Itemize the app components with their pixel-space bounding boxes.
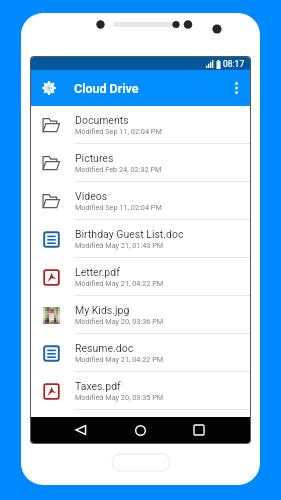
staticText: Modified Sep 11, 02:04 PM	[75, 203, 162, 212]
staticText: My Kids.jpg	[75, 304, 130, 316]
button[interactable]: Resume.doc	[31, 334, 250, 372]
staticText: Modified May 20, 03:36 PM	[75, 317, 164, 326]
staticText: Birthday Guest List.doc	[75, 228, 184, 240]
staticText: Modified Feb 24, 02:32 PM	[75, 165, 162, 174]
staticText: Videos	[75, 190, 108, 202]
staticText: Documents	[75, 114, 129, 126]
button[interactable]: More options	[225, 77, 247, 99]
staticText: Modified Sep 11, 02:04 PM	[75, 127, 162, 136]
button[interactable]: Settings	[37, 76, 61, 100]
staticText: Letter.pdf	[75, 266, 120, 278]
button[interactable]: Videos	[31, 182, 250, 220]
button[interactable]: Home	[128, 418, 152, 442]
staticText: Modified May 21, 01:43 PM	[75, 241, 164, 250]
button[interactable]: Letter.pdf	[31, 258, 250, 296]
button[interactable]: Documents	[31, 106, 250, 144]
staticText: Modified May 21, 04:22 PM	[75, 279, 164, 288]
button[interactable]: Recents	[187, 418, 211, 442]
staticText: Pictures	[75, 152, 114, 164]
staticText: Modified May 20, 03:35 PM	[75, 393, 164, 402]
button[interactable]: My Kids.jpg	[31, 296, 250, 334]
button[interactable]: Birthday Guest List.doc	[31, 220, 250, 258]
button[interactable]: Pictures	[31, 144, 250, 182]
staticText: 08:17	[223, 59, 245, 69]
staticText: Cloud Drive	[74, 81, 139, 96]
button[interactable]: Back	[69, 418, 93, 442]
staticText: Resume.doc	[75, 342, 134, 354]
staticText: Modified May 21, 04:22 PM	[75, 355, 164, 364]
staticText: Taxes.pdf	[75, 380, 121, 392]
button[interactable]: Taxes.pdf	[31, 372, 250, 410]
